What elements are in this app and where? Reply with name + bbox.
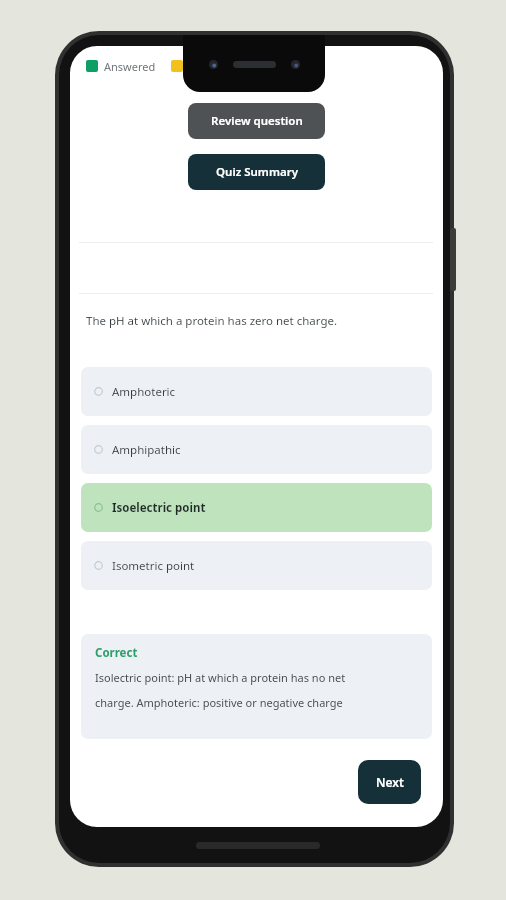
staticText: Amphipathic	[112, 442, 181, 458]
button[interactable]: Next	[358, 760, 421, 804]
other: Select Isometric point	[94, 561, 103, 570]
staticText: Isolectric point: pH at which a protein …	[95, 670, 346, 685]
staticText: Next	[376, 774, 404, 790]
button[interactable]: Select Amphoteric	[81, 367, 432, 416]
other: Select Isoelectric point	[94, 503, 103, 512]
button[interactable]: Select Isometric point	[81, 541, 432, 590]
other: Select Amphipathic	[94, 445, 103, 454]
staticText: charge. Amphoteric: positive or negative…	[95, 695, 343, 710]
staticText: Isoelectric point	[112, 500, 206, 516]
staticText: Isometric point	[112, 558, 195, 574]
button[interactable]: Review question	[188, 103, 325, 139]
other: Select Amphoteric	[94, 387, 103, 396]
button[interactable]: Select Isoelectric point	[81, 483, 432, 532]
button[interactable]: Select Amphipathic	[81, 425, 432, 474]
staticText: Review question	[211, 113, 303, 129]
staticText: The pH at which a protein has zero net c…	[86, 313, 338, 329]
staticText: Quiz Summary	[216, 164, 298, 180]
staticText: Correct	[95, 645, 138, 661]
staticText: Amphoteric	[112, 384, 176, 400]
staticText: Answered	[104, 59, 156, 74]
button[interactable]: Quiz Summary	[188, 154, 325, 190]
